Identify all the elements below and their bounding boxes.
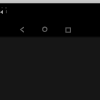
button[interactable]: Home bbox=[39, 23, 53, 37]
button[interactable]: Back bbox=[0, 6, 10, 16]
button[interactable]: Back bbox=[16, 23, 30, 37]
button[interactable]: Recent apps bbox=[61, 23, 75, 37]
